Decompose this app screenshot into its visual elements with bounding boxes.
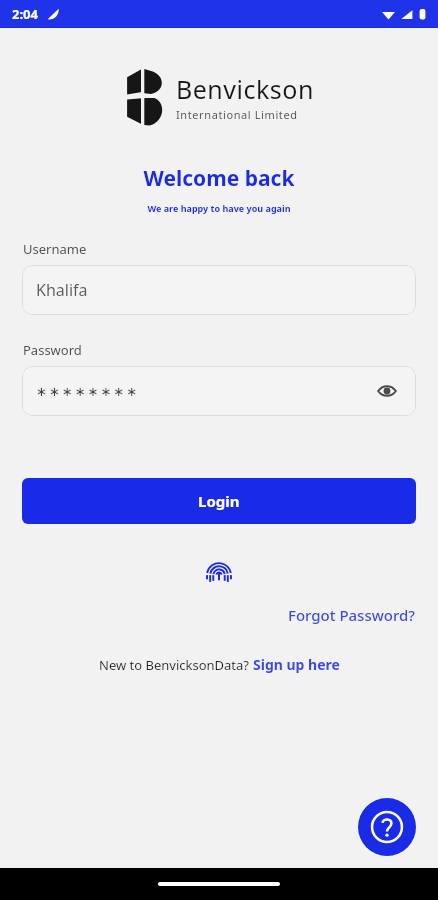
staticText: We are happy to have you again xyxy=(0,202,438,214)
button[interactable]: Help xyxy=(358,798,416,856)
staticText: Password xyxy=(23,341,438,359)
button[interactable]: Forgot Password? xyxy=(288,605,416,625)
staticText: Login xyxy=(198,491,240,511)
button[interactable]: Show password xyxy=(372,376,402,406)
staticText: Sign up here xyxy=(253,655,340,674)
staticText: ∗∗∗∗∗∗∗∗ xyxy=(36,384,140,399)
button[interactable]: Fingerprint login xyxy=(198,551,240,593)
button[interactable]: Khalifa xyxy=(22,265,416,315)
staticText: Khalifa xyxy=(36,279,88,301)
staticText: 2:04 xyxy=(12,5,38,23)
staticText: Forgot Password? xyxy=(288,605,416,625)
staticText: Welcome back xyxy=(0,164,438,193)
button[interactable]: Sign up here xyxy=(253,655,340,674)
staticText: Benvickson xyxy=(176,72,314,106)
staticText: New to BenvicksonData? xyxy=(99,656,253,674)
staticText: Username xyxy=(23,240,438,258)
button[interactable]: Login xyxy=(22,478,416,524)
staticText: International Limited xyxy=(176,107,298,122)
button[interactable]: ∗∗∗∗∗∗∗∗ xyxy=(22,366,416,416)
